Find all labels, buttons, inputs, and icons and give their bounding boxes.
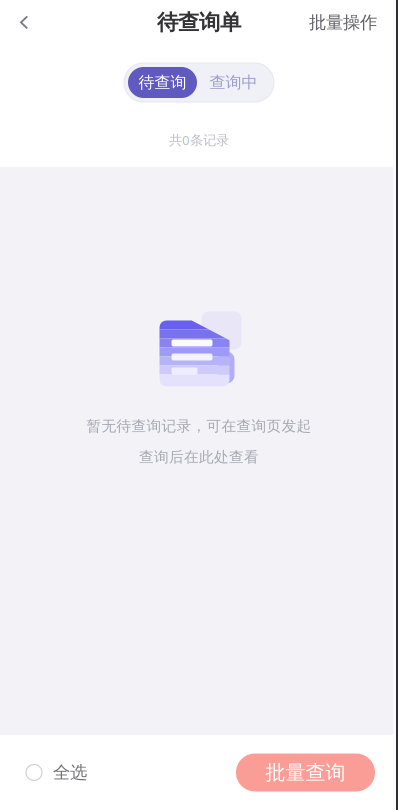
staticText: 暂无待查询记录，可在查询页发起	[86, 417, 311, 435]
staticText: 批量查询	[265, 760, 345, 785]
button[interactable]: 返回	[0, 4, 43, 40]
button[interactable]: 查询中	[197, 67, 270, 98]
button[interactable]: 待查询	[128, 67, 197, 98]
staticText: 共0条记录	[169, 131, 229, 149]
staticText: 待查询	[138, 73, 186, 92]
staticText: 查询中	[209, 73, 257, 92]
staticText: 查询后在此处查看	[139, 448, 259, 466]
staticText: 全选	[53, 762, 87, 783]
button[interactable]: 批量操作	[309, 1, 398, 44]
button[interactable]: 批量查询	[236, 753, 375, 791]
staticText: 待查询单	[157, 9, 241, 36]
button[interactable]: 全选	[0, 748, 87, 797]
staticText: 批量操作	[309, 12, 377, 33]
